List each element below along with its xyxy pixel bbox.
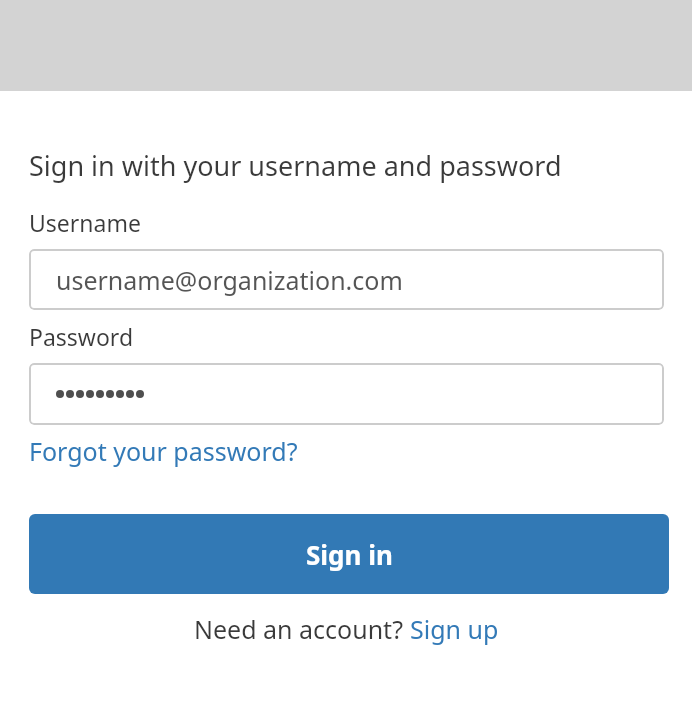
staticText: Password: [29, 321, 134, 352]
staticText: Username: [29, 207, 141, 238]
staticText: username@organization.com: [56, 263, 403, 297]
staticText: Sign in with your username and password: [29, 147, 562, 184]
staticText: Forgot your password?: [29, 434, 298, 468]
staticText: Need an account?: [194, 612, 410, 646]
button[interactable]: Sign in: [29, 514, 669, 594]
staticText: Sign in: [306, 537, 393, 572]
button[interactable]: Sign up: [410, 612, 499, 646]
button[interactable]: Username input: [29, 249, 664, 310]
button[interactable]: Password input: [29, 363, 664, 425]
button[interactable]: Forgot your password?: [29, 434, 298, 468]
staticText: Sign up: [410, 612, 499, 646]
